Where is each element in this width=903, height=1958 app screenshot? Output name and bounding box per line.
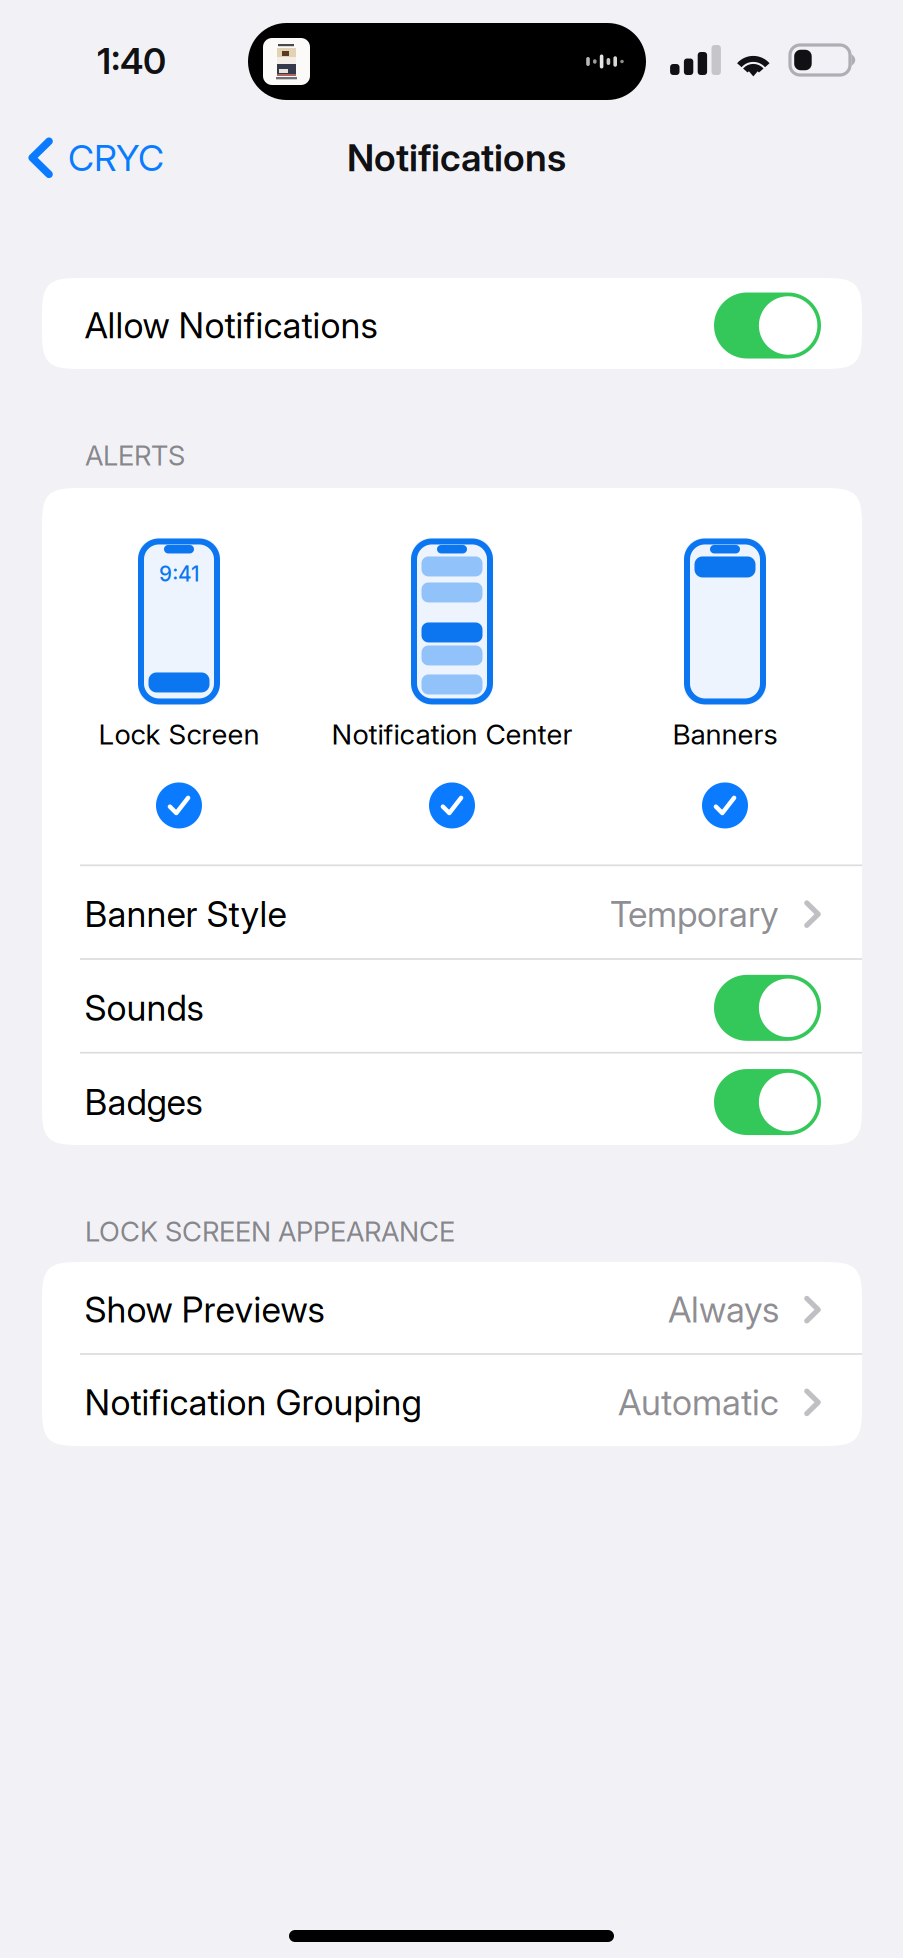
staticText: 1:40 [97, 39, 166, 83]
button[interactable]: Notification Center [315, 536, 588, 828]
staticText: ALERTS [85, 439, 185, 472]
button[interactable]: Sounds [42, 960, 862, 1052]
staticText: Automatic [618, 1381, 779, 1424]
button[interactable]: Allow Notifications [42, 278, 862, 369]
staticText: Banner Style [84, 893, 286, 936]
staticText: Notification Grouping [84, 1381, 421, 1424]
button[interactable]: Badges [42, 1053, 862, 1146]
staticText: Badges [84, 1081, 202, 1123]
staticText: Lock Screen [98, 717, 259, 751]
staticText: Notification Center [331, 717, 572, 751]
button[interactable]: CRYC [0, 122, 180, 194]
staticText: Always [668, 1288, 779, 1331]
staticText: CRYC [68, 136, 164, 180]
button[interactable]: Banner Style [42, 866, 862, 958]
button[interactable]: Banners [588, 536, 861, 828]
staticText: Banners [672, 717, 777, 751]
staticText: LOCK SCREEN APPEARANCE [85, 1215, 455, 1248]
button[interactable]: Show Previews [42, 1262, 862, 1353]
staticText: 9:41 [159, 561, 199, 586]
staticText: Temporary [610, 893, 779, 936]
button[interactable]: 9:41 [42, 536, 315, 828]
staticText: Show Previews [84, 1288, 324, 1331]
staticText: Notifications [347, 135, 566, 180]
staticText: Sounds [84, 986, 203, 1029]
staticText: Allow Notifications [84, 304, 377, 347]
button[interactable]: Notification Grouping [42, 1355, 862, 1446]
